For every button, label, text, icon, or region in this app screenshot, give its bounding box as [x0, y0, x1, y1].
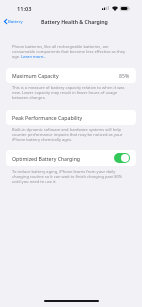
- staticText: Peak Performance Capability: [12, 114, 83, 121]
- button[interactable]: Maximum Capacity: [6, 68, 136, 83]
- staticText: 11:03: [17, 5, 32, 13]
- staticText: Battery Health & Charging: [41, 18, 108, 25]
- button[interactable]: Peak Performance Capability: [6, 110, 136, 125]
- staticText: Phone batteries, like all rechargeable b…: [12, 44, 128, 59]
- staticText: To reduce battery aging, iPhone learns f…: [12, 169, 128, 184]
- staticText: Maximum Capacity: [12, 72, 59, 79]
- staticText: Optimized Battery Charging: [12, 155, 81, 162]
- staticText: 85%: [119, 72, 130, 79]
- button[interactable]: Optimized Battery Charging: [6, 150, 136, 166]
- button[interactable]: Battery: [3, 17, 24, 25]
- staticText: Built-in dynamic software and hardware s…: [12, 127, 128, 142]
- staticText: This is a measure of battery capacity re…: [12, 85, 128, 100]
- staticText: Battery: [8, 18, 23, 24]
- button[interactable]: Optimized Battery Charging: [114, 153, 130, 163]
